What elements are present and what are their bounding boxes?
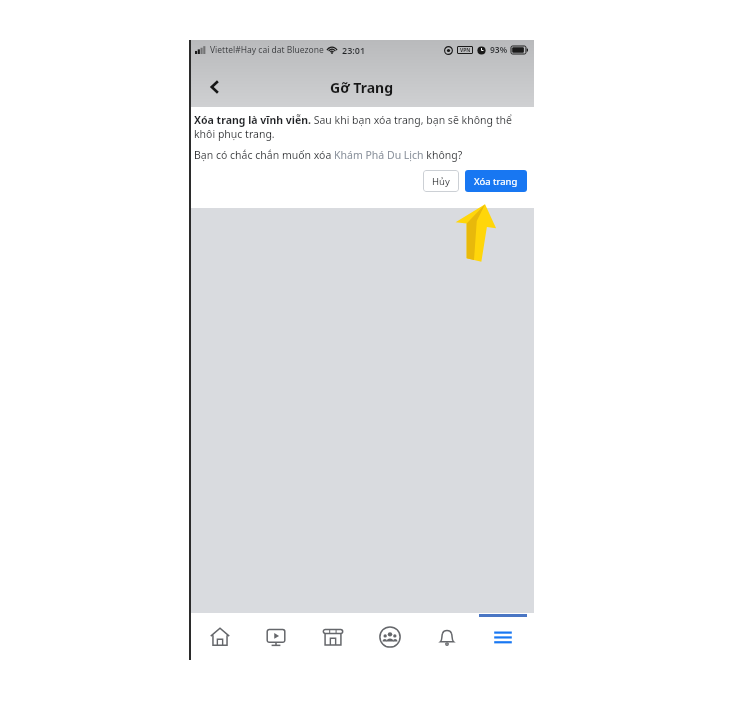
- staticText: Xóa trang: [474, 175, 518, 188]
- button[interactable]: Marketplace: [307, 613, 359, 660]
- button[interactable]: Notifications: [421, 613, 473, 660]
- button[interactable]: Groups: [364, 613, 416, 660]
- button[interactable]: Back: [197, 69, 233, 105]
- staticText: Bạn có chắc chắn muốn xóa Khám Phá Du Lị…: [194, 148, 463, 162]
- button[interactable]: Video: [250, 613, 302, 660]
- staticText: Viettel#Hay cai dat Bluezone: [210, 44, 324, 56]
- button[interactable]: Xóa trang: [465, 170, 527, 192]
- staticText: VPN: [460, 47, 471, 54]
- button[interactable]: Hủy: [423, 170, 459, 192]
- staticText: Gỡ Trang: [330, 78, 393, 97]
- button[interactable]: Menu: [477, 613, 529, 660]
- staticText: Hủy: [432, 175, 450, 188]
- button[interactable]: Home: [194, 613, 246, 660]
- staticText: Xóa trang là vĩnh viễn. Sau khi bạn xóa …: [194, 113, 527, 141]
- staticText: 23:01: [342, 44, 366, 56]
- staticText: 93%: [490, 44, 508, 56]
